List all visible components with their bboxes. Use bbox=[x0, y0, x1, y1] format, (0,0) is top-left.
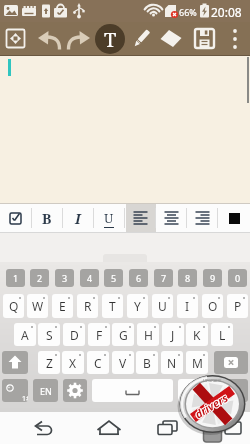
button[interactable]: Z bbox=[38, 351, 60, 374]
staticText: I bbox=[75, 209, 81, 228]
button[interactable]: C bbox=[87, 351, 109, 374]
button[interactable] bbox=[129, 207, 152, 229]
button[interactable]: 9 bbox=[203, 269, 222, 287]
button[interactable]: 5 bbox=[104, 269, 123, 287]
button[interactable] bbox=[194, 28, 216, 50]
staticText: U bbox=[158, 298, 167, 314]
button[interactable]: 8 bbox=[178, 269, 197, 287]
button[interactable]: L bbox=[211, 323, 233, 346]
staticText: drivers bbox=[192, 389, 231, 421]
button[interactable] bbox=[224, 208, 244, 228]
staticText: EN bbox=[40, 385, 52, 397]
button[interactable]: A bbox=[14, 323, 36, 346]
button[interactable]: Q bbox=[3, 294, 24, 318]
button[interactable]: I bbox=[177, 294, 198, 318]
button[interactable] bbox=[160, 207, 183, 229]
button[interactable]: H bbox=[137, 323, 159, 346]
button[interactable]: J bbox=[162, 323, 184, 346]
staticText: W bbox=[32, 298, 44, 314]
staticText: G bbox=[119, 327, 128, 343]
button[interactable]: Y bbox=[127, 294, 148, 318]
staticText: 20:08 bbox=[211, 4, 242, 20]
staticText: Y bbox=[134, 298, 141, 314]
button[interactable]: V bbox=[112, 351, 134, 374]
staticText: T bbox=[109, 298, 116, 314]
button[interactable] bbox=[96, 416, 122, 444]
staticText: UPGRADE bbox=[203, 378, 222, 383]
button[interactable]: I bbox=[66, 205, 90, 231]
staticText: 4 bbox=[87, 272, 93, 284]
button[interactable] bbox=[6, 29, 25, 48]
button[interactable]: T bbox=[102, 294, 123, 318]
button[interactable]: 1 bbox=[6, 269, 25, 287]
staticText: V bbox=[119, 355, 127, 371]
button[interactable]: B bbox=[136, 351, 158, 374]
button[interactable]: F bbox=[88, 323, 110, 346]
staticText: drivers bbox=[192, 390, 231, 422]
staticText: D bbox=[70, 327, 79, 343]
button[interactable]: B bbox=[35, 205, 59, 231]
button[interactable]: EN bbox=[33, 379, 58, 402]
button[interactable] bbox=[36, 29, 62, 51]
staticText: L bbox=[219, 327, 226, 343]
staticText: U bbox=[104, 209, 114, 227]
button[interactable]: 4 bbox=[80, 269, 99, 287]
staticText: 66% bbox=[179, 6, 197, 18]
staticText: A bbox=[21, 327, 29, 343]
button[interactable] bbox=[155, 416, 179, 444]
button[interactable]: 6 bbox=[129, 269, 148, 287]
button[interactable] bbox=[130, 28, 152, 50]
staticText: I bbox=[185, 298, 190, 314]
staticText: O bbox=[208, 298, 218, 314]
button[interactable] bbox=[227, 27, 243, 51]
button[interactable]: 2 bbox=[30, 269, 49, 287]
button[interactable]: R bbox=[77, 294, 98, 318]
staticText: 2 bbox=[37, 272, 43, 284]
button[interactable] bbox=[159, 28, 184, 50]
button[interactable]: O bbox=[202, 294, 223, 318]
button[interactable]: 1# bbox=[2, 379, 28, 402]
staticText: 6 bbox=[136, 272, 142, 284]
staticText: 7 bbox=[161, 272, 167, 284]
button[interactable]: 7 bbox=[154, 269, 173, 287]
button[interactable] bbox=[222, 416, 246, 444]
button[interactable]: N bbox=[161, 351, 183, 374]
button[interactable] bbox=[63, 379, 87, 402]
button[interactable]: K bbox=[186, 323, 208, 346]
staticText: F bbox=[96, 327, 103, 343]
button[interactable] bbox=[2, 351, 28, 374]
button[interactable]: X bbox=[62, 351, 84, 374]
staticText: E bbox=[59, 298, 66, 314]
button[interactable]: . bbox=[178, 379, 209, 402]
staticText: S bbox=[46, 327, 53, 343]
button[interactable] bbox=[191, 207, 214, 229]
staticText: T bbox=[104, 26, 117, 53]
staticText: drivers bbox=[193, 389, 232, 421]
button[interactable]: M bbox=[186, 351, 208, 374]
staticText: J bbox=[171, 327, 175, 343]
staticText: H bbox=[144, 327, 153, 343]
staticText: . bbox=[192, 383, 196, 399]
staticText: 1# bbox=[22, 394, 28, 402]
button[interactable]: W bbox=[27, 294, 48, 318]
button[interactable]: E bbox=[52, 294, 73, 318]
button[interactable]: 3 bbox=[55, 269, 74, 287]
button[interactable] bbox=[214, 379, 248, 402]
button[interactable] bbox=[66, 29, 92, 51]
button[interactable]: T bbox=[95, 24, 125, 54]
staticText: 5 bbox=[111, 272, 117, 284]
button[interactable]: 0 bbox=[228, 269, 247, 287]
button[interactable]: U bbox=[152, 294, 173, 318]
staticText: 0 bbox=[235, 272, 241, 284]
button[interactable]: D bbox=[63, 323, 85, 346]
button[interactable]: G bbox=[112, 323, 134, 346]
button[interactable] bbox=[32, 417, 56, 443]
staticText: Z bbox=[46, 355, 53, 371]
button[interactable] bbox=[214, 351, 248, 374]
button[interactable]: S bbox=[38, 323, 60, 346]
button[interactable]: U bbox=[97, 205, 121, 231]
staticText: P bbox=[234, 298, 242, 314]
button[interactable] bbox=[4, 206, 28, 230]
button[interactable]: P bbox=[227, 294, 248, 318]
button[interactable] bbox=[92, 379, 173, 402]
